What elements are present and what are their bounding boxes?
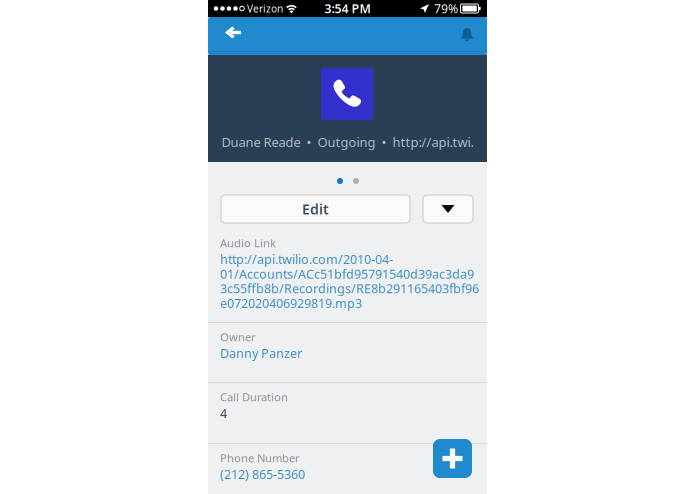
staticText: Audio Link	[220, 235, 276, 251]
staticText: Owner	[220, 329, 256, 345]
staticText: 4	[220, 405, 227, 422]
staticText: Call Duration	[220, 389, 288, 405]
staticText: e072020406929819.mp3	[220, 295, 362, 312]
staticText: Duane Reade • Outgoing • http://api.twi.	[221, 133, 473, 151]
button[interactable]: Edit	[221, 195, 410, 223]
staticText: 3c55ffb8b/Recordings/RE8b291165403fbf96	[220, 280, 479, 297]
button[interactable]: Back	[211, 14, 255, 51]
button[interactable]: More actions	[423, 195, 473, 223]
staticText: 01/Accounts/ACc51bfd95791540d39ac3da9	[220, 265, 474, 282]
staticText: 3:54 PM	[324, 0, 370, 17]
staticText: Edit	[302, 199, 329, 219]
button[interactable]: Notifications	[445, 16, 489, 54]
staticText: Phone Number	[220, 450, 300, 466]
staticText: 79%	[434, 0, 458, 17]
staticText: http://api.twilio.com/2010-04-	[220, 251, 393, 268]
staticText: (212) 865-5360	[220, 466, 305, 483]
staticText: Danny Panzer	[220, 345, 302, 362]
staticText: Verizon	[247, 2, 283, 15]
button[interactable]: Add	[433, 439, 472, 478]
